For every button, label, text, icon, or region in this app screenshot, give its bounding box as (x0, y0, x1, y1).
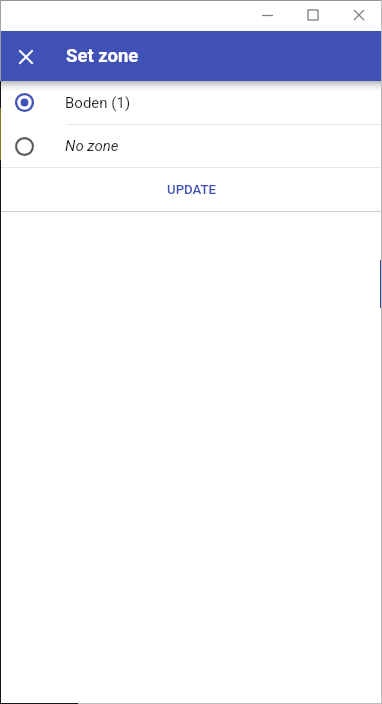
staticText: No zone (65, 137, 119, 155)
button[interactable]: UPDATE (0, 168, 382, 211)
staticText: UPDATE (167, 182, 216, 197)
button[interactable]: Minimize (244, 0, 290, 30)
button[interactable]: Boden (1) (0, 81, 382, 124)
button[interactable]: Close window (336, 0, 382, 30)
button[interactable]: Close (8, 38, 44, 74)
button[interactable]: No zone (0, 125, 382, 167)
staticText: Boden (1) (65, 94, 131, 112)
button[interactable]: Maximize (290, 0, 336, 30)
staticText: Set zone (66, 45, 139, 67)
